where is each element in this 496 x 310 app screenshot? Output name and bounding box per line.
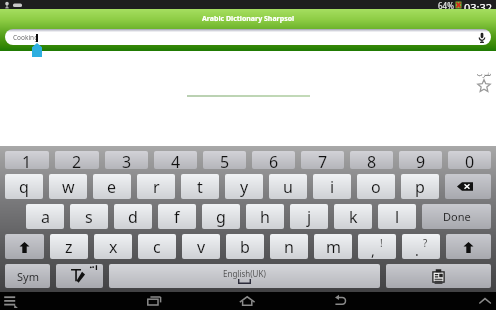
staticText: . — [415, 241, 419, 259]
staticText: f — [174, 206, 180, 228]
button[interactable]: Add to favourites — [477, 79, 491, 92]
button[interactable]: 1 — [5, 151, 49, 169]
button[interactable]: n — [270, 234, 308, 259]
button[interactable]: 3 — [105, 151, 148, 169]
button[interactable]: Show notifications — [479, 296, 492, 306]
staticText: 4 — [171, 151, 181, 169]
staticText: Done — [443, 209, 471, 224]
button[interactable]: 0 — [448, 151, 491, 169]
staticText: d — [128, 206, 138, 228]
button[interactable]: 5 — [203, 151, 246, 169]
staticText: c — [153, 236, 161, 258]
button[interactable]: t — [181, 174, 219, 199]
button[interactable]: j — [290, 204, 328, 229]
button[interactable]: d — [114, 204, 152, 229]
button[interactable]: w — [49, 174, 87, 199]
button[interactable]: Menu — [3, 295, 19, 308]
button[interactable]: 9 — [399, 151, 442, 169]
button[interactable]: 6 — [252, 151, 295, 169]
staticText: y — [240, 176, 249, 198]
staticText: b — [240, 236, 250, 258]
button[interactable]: p — [401, 174, 439, 199]
staticText: r — [153, 176, 160, 198]
staticText: a — [41, 206, 50, 228]
button[interactable]: Clipboard — [386, 264, 491, 288]
staticText: ? — [423, 236, 428, 250]
button[interactable]: l — [378, 204, 416, 229]
staticText: k — [349, 206, 358, 228]
staticText: ! — [380, 236, 383, 250]
button[interactable]: z — [50, 234, 88, 259]
staticText: h — [260, 206, 270, 228]
button[interactable]: ? — [402, 234, 440, 259]
button[interactable]: r — [137, 174, 175, 199]
button[interactable]: Backspace — [445, 174, 491, 199]
button[interactable]: s — [70, 204, 108, 229]
button[interactable]: k — [334, 204, 372, 229]
button[interactable]: q — [5, 174, 43, 199]
staticText: e — [107, 176, 117, 198]
staticText: u — [283, 176, 293, 198]
staticText: Sym — [17, 269, 39, 284]
button[interactable]: Change input method — [56, 264, 103, 288]
button[interactable]: y — [225, 174, 263, 199]
button[interactable]: o — [357, 174, 395, 199]
button[interactable]: Recent apps — [147, 296, 162, 306]
staticText: 2 — [72, 151, 82, 169]
button[interactable]: b — [226, 234, 264, 259]
staticText: 03:32 — [464, 0, 493, 9]
staticText: g — [216, 206, 226, 228]
button[interactable]: 2 — [55, 151, 99, 169]
button[interactable]: m — [314, 234, 352, 259]
button[interactable]: English(UK) — [109, 264, 380, 288]
staticText: شرب — [477, 70, 491, 77]
staticText: 6 — [269, 151, 279, 169]
button[interactable]: f — [158, 204, 196, 229]
staticText: j — [307, 206, 312, 228]
button[interactable]: v — [182, 234, 220, 259]
button[interactable]: 4 — [154, 151, 197, 169]
staticText: Cooking — [13, 33, 39, 42]
button[interactable]: 7 — [301, 151, 344, 169]
staticText: n — [284, 236, 294, 258]
staticText: t — [197, 176, 203, 198]
staticText: 8 — [367, 151, 377, 169]
button[interactable]: Shift — [5, 234, 44, 259]
staticText: q — [19, 176, 29, 198]
staticText: English(UK) — [223, 268, 266, 279]
other: Voice search — [478, 32, 486, 43]
staticText: i — [330, 176, 335, 198]
button[interactable]: Back — [334, 296, 349, 306]
staticText: o — [371, 176, 381, 198]
staticText: 5 — [220, 151, 230, 169]
button[interactable]: ! — [358, 234, 396, 259]
button[interactable]: e — [93, 174, 131, 199]
staticText: 3 — [122, 151, 132, 169]
button[interactable]: g — [202, 204, 240, 229]
staticText: w — [62, 176, 75, 198]
button[interactable]: i — [313, 174, 351, 199]
staticText: l — [395, 206, 400, 228]
button[interactable]: Home — [239, 296, 256, 306]
staticText: m — [326, 236, 341, 258]
staticText: 0 — [465, 151, 475, 169]
button[interactable]: a — [26, 204, 64, 229]
button[interactable]: h — [246, 204, 284, 229]
button[interactable]: Shift — [446, 234, 491, 259]
button[interactable]: u — [269, 174, 307, 199]
button[interactable]: Cooking — [5, 29, 491, 45]
button[interactable]: 8 — [350, 151, 393, 169]
staticText: s — [85, 206, 93, 228]
staticText: Arabic Dictionary Sharpsol — [202, 14, 295, 24]
button[interactable]: x — [94, 234, 132, 259]
staticText: 9 — [416, 151, 426, 169]
staticText: z — [65, 236, 73, 258]
staticText: v — [197, 236, 206, 258]
staticText: x — [109, 236, 118, 258]
button[interactable]: Sym — [5, 264, 50, 288]
staticText: p — [415, 176, 425, 198]
staticText: 64% — [438, 0, 454, 9]
staticText: 7 — [318, 151, 328, 169]
button[interactable]: c — [138, 234, 176, 259]
button[interactable]: Done — [422, 204, 491, 229]
